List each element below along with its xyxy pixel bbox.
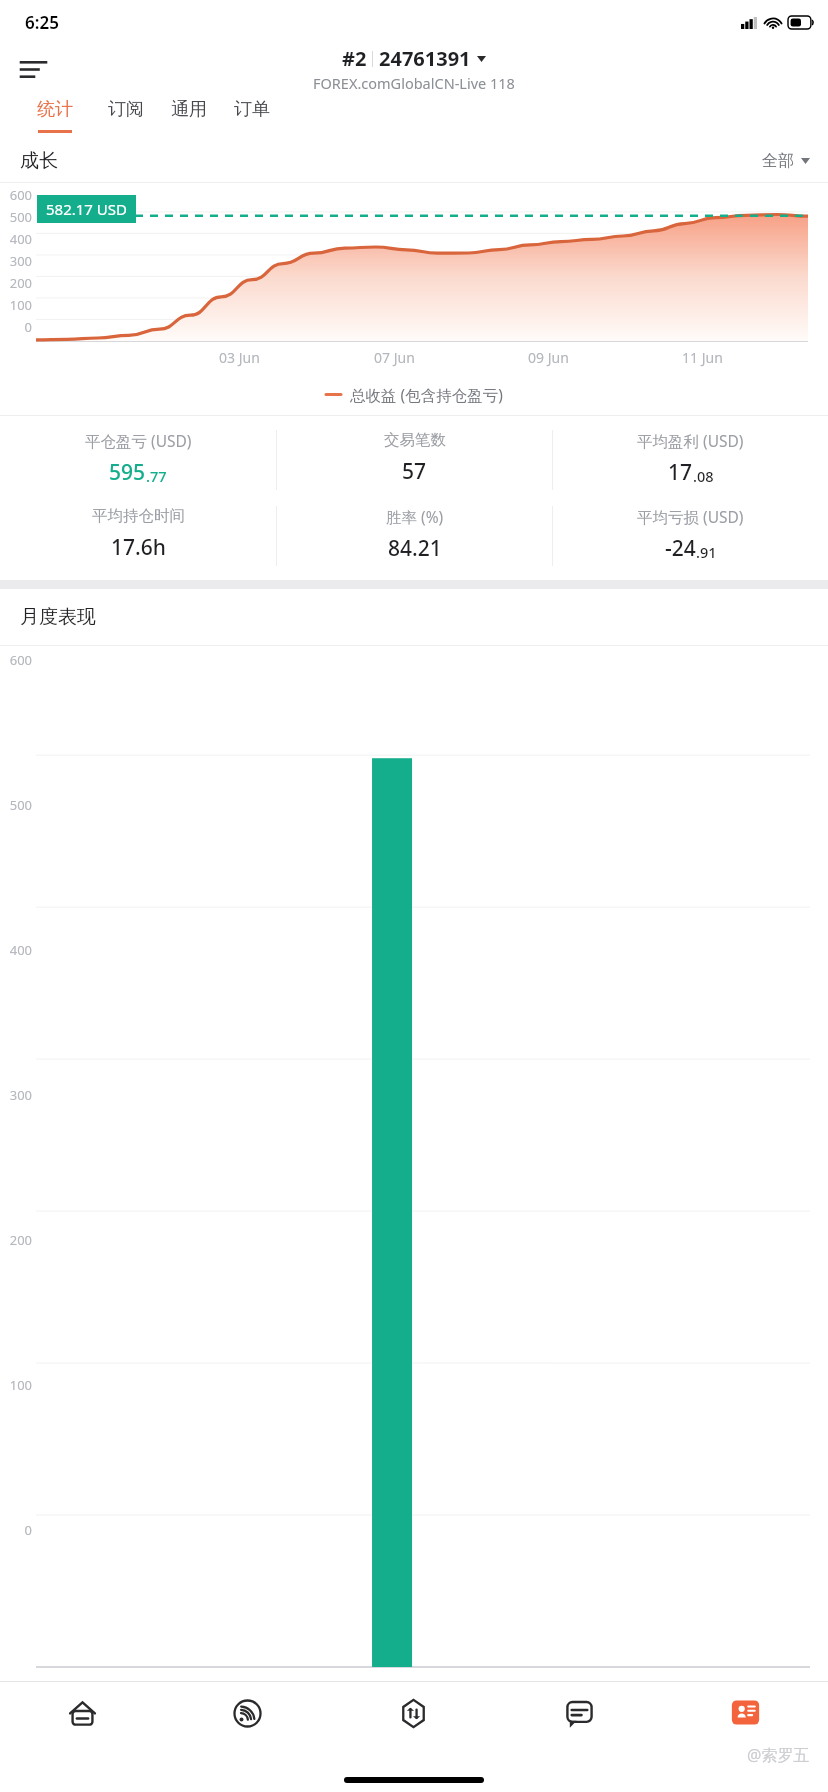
staticText: .08: [693, 466, 714, 486]
staticText: 成长: [20, 149, 58, 173]
staticText: 09 Jun: [528, 348, 569, 367]
staticText: 交易笔数: [384, 430, 446, 450]
button[interactable]: 全部: [762, 151, 810, 171]
staticText: 订单: [234, 98, 270, 121]
button[interactable]: 平均盈利 (USD): [553, 430, 828, 487]
button[interactable]: Chat: [496, 1682, 662, 1744]
staticText: 平均亏损 (USD): [637, 506, 744, 527]
staticText: @索罗五: [747, 1744, 810, 1766]
staticText: 0: [0, 1521, 32, 1539]
button[interactable]: 胜率 (%): [277, 506, 552, 563]
staticText: 84.21: [388, 534, 442, 563]
button[interactable]: 统计: [16, 92, 94, 139]
staticText: 500: [0, 208, 32, 226]
button[interactable]: Profile: [662, 1682, 828, 1744]
staticText: 03 Jun: [219, 348, 260, 367]
button[interactable]: 订单: [220, 92, 283, 139]
staticText: 100: [0, 296, 32, 314]
staticText: 平仓盈亏 (USD): [85, 430, 192, 451]
staticText: 600: [0, 186, 32, 204]
staticText: .91: [696, 542, 717, 562]
staticText: 400: [0, 230, 32, 248]
staticText: 600: [0, 651, 32, 669]
button[interactable]: 通用: [157, 92, 220, 139]
staticText: FOREX.comGlobalCN-Live 118: [313, 73, 515, 92]
staticText: 200: [0, 1231, 32, 1249]
staticText: -24: [665, 534, 696, 563]
button[interactable]: 交易笔数: [277, 430, 552, 486]
staticText: 400: [0, 941, 32, 959]
button[interactable]: Menu: [10, 46, 56, 92]
staticText: 200: [0, 274, 32, 292]
staticText: 总收益 (包含持仓盈亏): [350, 384, 503, 405]
button[interactable]: #2: [313, 45, 515, 92]
staticText: 595: [109, 458, 146, 487]
staticText: 11 Jun: [682, 348, 723, 367]
staticText: 平均持仓时间: [92, 506, 185, 526]
staticText: 07 Jun: [374, 348, 415, 367]
staticText: 582.17 USD: [46, 199, 127, 219]
staticText: .77: [146, 466, 167, 486]
staticText: 统计: [37, 98, 73, 121]
button[interactable]: Trade: [330, 1682, 496, 1744]
button[interactable]: 平均亏损 (USD): [553, 506, 828, 563]
staticText: 6:25: [25, 11, 59, 34]
staticText: 17.6h: [111, 533, 166, 562]
staticText: 17: [668, 458, 693, 487]
staticText: 0: [0, 318, 32, 336]
button[interactable]: 平均持仓时间: [0, 506, 276, 562]
staticText: 57: [402, 457, 427, 486]
staticText: 300: [0, 252, 32, 270]
staticText: 胜率 (%): [386, 506, 444, 527]
staticText: 平均盈利 (USD): [637, 430, 744, 451]
staticText: 100: [0, 1376, 32, 1394]
staticText: 订阅: [108, 98, 144, 121]
button[interactable]: 平仓盈亏 (USD): [0, 430, 276, 487]
staticText: 月度表现: [20, 605, 96, 629]
staticText: 500: [0, 796, 32, 814]
button[interactable]: Home: [0, 1682, 165, 1744]
button[interactable]: Signals: [165, 1682, 330, 1744]
staticText: 通用: [171, 98, 207, 121]
staticText: #2: [342, 45, 367, 72]
staticText: 300: [0, 1086, 32, 1104]
staticText: 全部: [762, 151, 794, 171]
staticText: 24761391: [379, 45, 471, 72]
button[interactable]: 订阅: [94, 92, 157, 139]
